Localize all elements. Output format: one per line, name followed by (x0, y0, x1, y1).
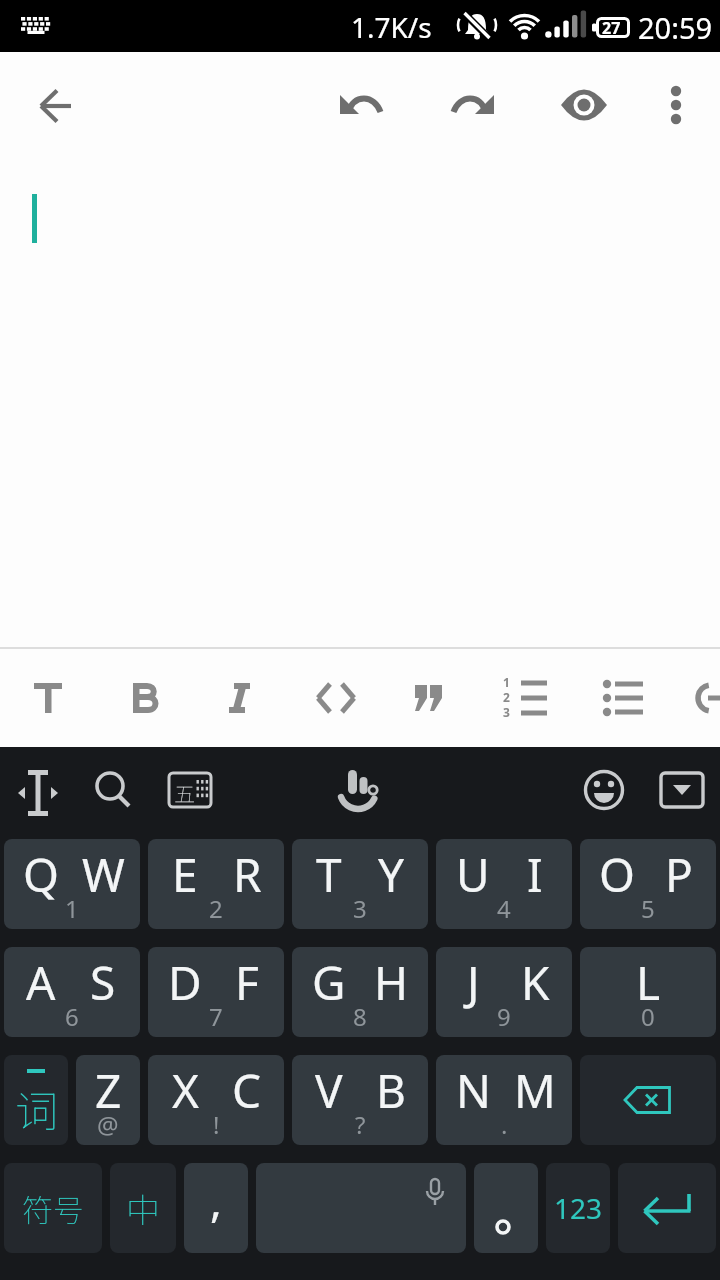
staticText: 3 (353, 892, 367, 925)
staticText: 中 (126, 1184, 160, 1233)
button[interactable]: L (580, 947, 716, 1037)
button[interactable] (449, 81, 497, 129)
staticText: 1.7K/s (351, 8, 432, 46)
button[interactable] (337, 81, 385, 129)
button[interactable] (104, 658, 184, 738)
button[interactable] (580, 1055, 716, 1145)
button[interactable]: A (4, 947, 140, 1037)
staticText: W (82, 843, 125, 906)
staticText: F (235, 951, 259, 1014)
staticText: 符号 (22, 1186, 84, 1231)
staticText: 27 (602, 17, 621, 39)
staticText: , (210, 1170, 222, 1230)
staticText: X (172, 1059, 199, 1122)
button[interactable]: J (436, 947, 572, 1037)
button[interactable]: G (292, 947, 428, 1037)
button[interactable]: X (148, 1055, 284, 1145)
staticText: A (26, 951, 56, 1014)
button[interactable] (584, 658, 664, 738)
staticText: . (501, 1108, 508, 1141)
staticText: O (599, 843, 635, 906)
staticText: Z (95, 1059, 122, 1122)
button[interactable] (296, 658, 376, 738)
staticText: K (521, 951, 550, 1014)
button[interactable]: 符号 (4, 1163, 102, 1253)
staticText: L (636, 951, 661, 1014)
button[interactable] (652, 81, 700, 129)
staticText: 9 (497, 1000, 511, 1033)
button[interactable]: D (148, 947, 284, 1037)
staticText: P (665, 843, 693, 906)
button[interactable] (658, 766, 706, 814)
staticText: U (456, 843, 490, 906)
staticText: 4 (497, 892, 511, 925)
button[interactable]: 1 2 3 (488, 658, 568, 738)
button[interactable]: 五 (166, 766, 214, 814)
staticText: D (168, 951, 202, 1014)
staticText: Y (378, 843, 405, 906)
staticText: 2 (209, 892, 223, 925)
staticText: 1 2 3 (503, 674, 510, 720)
staticText: 五 (174, 778, 195, 808)
button[interactable] (8, 658, 88, 738)
button[interactable]: 123 (546, 1163, 610, 1253)
staticText: E (172, 843, 198, 906)
button[interactable]: T (292, 839, 428, 929)
staticText: 5 (641, 892, 655, 925)
button[interactable]: , (184, 1163, 248, 1253)
staticText: 词 (15, 1077, 58, 1139)
button[interactable] (14, 769, 62, 817)
staticText: 123 (554, 1189, 603, 1227)
button[interactable] (560, 81, 608, 129)
button[interactable] (336, 766, 384, 814)
staticText: 7 (209, 1000, 223, 1033)
staticText: R (233, 843, 262, 906)
button[interactable] (392, 658, 472, 738)
button[interactable]: E (148, 839, 284, 929)
staticText: S (90, 951, 116, 1014)
staticText: J (467, 951, 480, 1014)
staticText: 0 (641, 1000, 655, 1033)
staticText: 8 (353, 1000, 367, 1033)
staticText: G (312, 951, 346, 1014)
staticText: 1 (65, 892, 79, 925)
button[interactable] (580, 766, 628, 814)
staticText: N (456, 1059, 491, 1122)
button[interactable]: V (292, 1055, 428, 1145)
button[interactable] (256, 1163, 466, 1253)
staticText: I (527, 843, 543, 906)
button[interactable] (89, 766, 137, 814)
staticText: V (315, 1059, 343, 1122)
staticText: C (232, 1059, 262, 1122)
button[interactable]: Q (4, 839, 140, 929)
button[interactable]: Z (76, 1055, 140, 1145)
button[interactable] (618, 1163, 716, 1253)
button[interactable] (474, 1163, 538, 1253)
staticText: 20:59 (638, 8, 713, 47)
button[interactable] (200, 658, 280, 738)
staticText: M (514, 1059, 556, 1122)
button[interactable]: 词 (4, 1055, 68, 1145)
button[interactable] (680, 658, 720, 738)
button[interactable]: U (436, 839, 572, 929)
staticText: @ (97, 1108, 119, 1141)
button[interactable] (32, 82, 80, 130)
staticText: 6 (65, 1000, 79, 1033)
staticText: B (376, 1059, 406, 1122)
button[interactable]: N (436, 1055, 572, 1145)
button[interactable]: 中 (110, 1163, 176, 1253)
staticText: Q (23, 843, 59, 906)
staticText: T (316, 843, 342, 906)
staticText: ? (355, 1108, 366, 1141)
staticText: ! (213, 1108, 220, 1141)
button[interactable]: O (580, 839, 716, 929)
staticText: H (374, 951, 409, 1014)
